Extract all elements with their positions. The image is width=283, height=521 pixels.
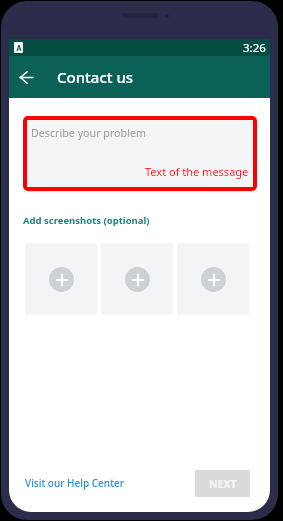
staticText: Add screenshots (optional) <box>23 214 150 227</box>
staticText: NEXT <box>209 477 237 491</box>
button[interactable]: Back <box>12 63 40 91</box>
button[interactable]: Add screenshot <box>177 243 249 315</box>
staticText: Describe your problem <box>31 126 146 141</box>
staticText: Text of the message <box>145 164 249 179</box>
staticText: Contact us <box>57 67 134 87</box>
button[interactable]: Add screenshot <box>25 243 97 315</box>
button[interactable]: Visit our Help Center <box>25 476 124 490</box>
button[interactable]: Add screenshot <box>101 243 173 315</box>
button[interactable]: Describe your problem <box>27 120 253 187</box>
button[interactable]: NEXT <box>195 470 250 497</box>
staticText: 3:26 <box>243 40 266 56</box>
